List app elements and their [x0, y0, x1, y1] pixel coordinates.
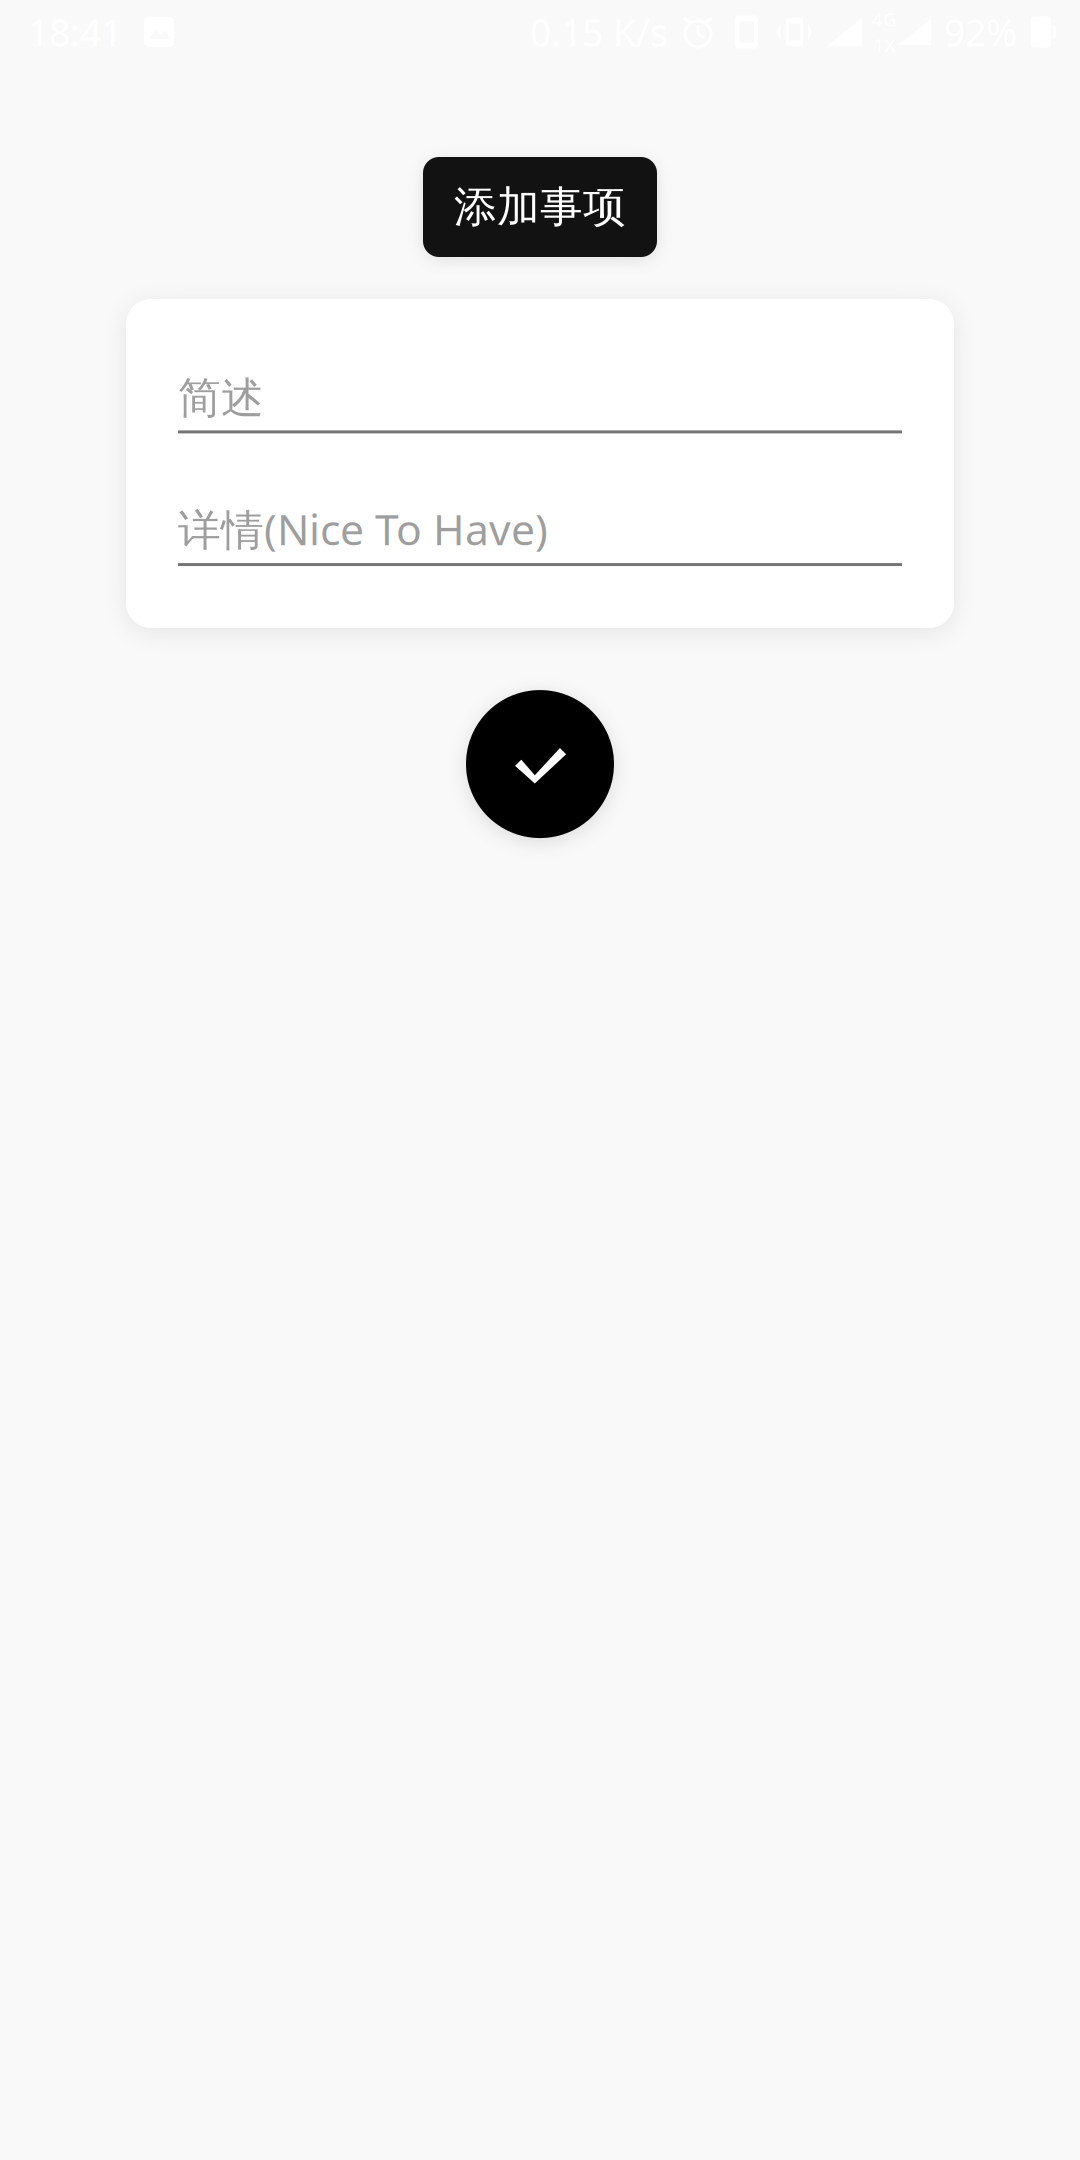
staticText: 详情(Nice To Have)	[178, 500, 548, 557]
button[interactable]: 添加事项	[423, 157, 657, 257]
staticText: 简述	[178, 372, 264, 424]
staticText: 添加事项	[454, 181, 626, 233]
button[interactable]: 详情(Nice To Have)	[178, 500, 902, 566]
button[interactable]: Confirm	[466, 690, 614, 838]
button[interactable]: 简述	[178, 372, 902, 433]
